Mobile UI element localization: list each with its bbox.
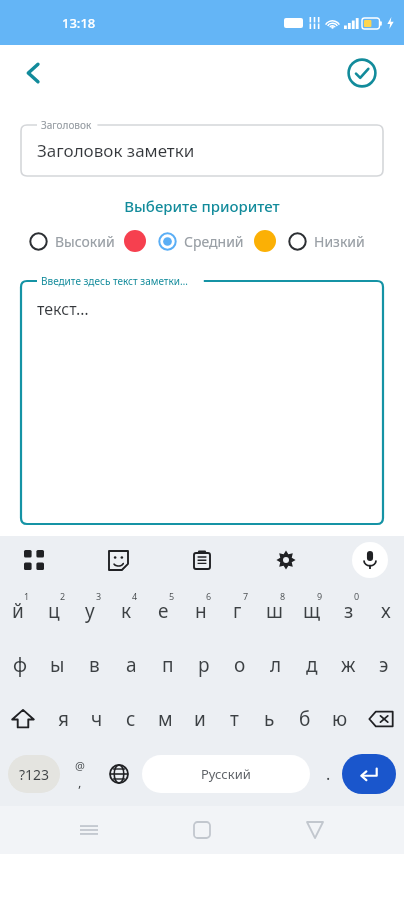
button[interactable]: Priority colour bbox=[254, 230, 276, 252]
button[interactable]: ?123 bbox=[8, 755, 60, 793]
button[interactable]: н bbox=[182, 584, 219, 638]
staticText: 9 bbox=[317, 590, 323, 602]
staticText: Высокий bbox=[55, 232, 115, 251]
button[interactable]: е bbox=[145, 584, 182, 638]
button[interactable]: Enter bbox=[342, 754, 396, 794]
staticText: Средний bbox=[184, 232, 244, 251]
staticText: 0 bbox=[354, 590, 360, 602]
staticText: э bbox=[379, 652, 389, 678]
staticText: х bbox=[381, 598, 391, 624]
button[interactable]: в bbox=[76, 638, 113, 692]
staticText: ю bbox=[332, 706, 348, 732]
staticText: Введите здесь текст заметки… bbox=[41, 274, 188, 288]
button[interactable]: п bbox=[150, 638, 186, 692]
button[interactable]: Selected priority bbox=[157, 231, 177, 251]
button[interactable]: я bbox=[46, 692, 80, 746]
staticText: 8 bbox=[280, 590, 286, 602]
button[interactable]: Settings bbox=[266, 540, 306, 580]
button[interactable]: т bbox=[217, 692, 252, 746]
button[interactable]: Clipboard bbox=[182, 540, 222, 580]
staticText: Низкий bbox=[314, 232, 365, 251]
staticText: з bbox=[344, 598, 354, 624]
staticText: 4 bbox=[132, 590, 138, 602]
staticText: 6 bbox=[206, 590, 212, 602]
staticText: л bbox=[270, 652, 282, 678]
button[interactable]: . bbox=[314, 746, 342, 802]
staticText: а bbox=[126, 652, 137, 678]
button[interactable]: ч bbox=[80, 692, 114, 746]
staticText: ь bbox=[264, 706, 275, 732]
button[interactable]: м bbox=[148, 692, 182, 746]
staticText: е bbox=[158, 598, 169, 624]
button[interactable]: а bbox=[113, 638, 150, 692]
staticText: б bbox=[299, 706, 311, 732]
button[interactable]: к bbox=[108, 584, 145, 638]
staticText: н bbox=[195, 598, 207, 624]
staticText: с bbox=[126, 706, 136, 732]
button[interactable]: р bbox=[186, 638, 222, 692]
staticText: р bbox=[198, 652, 210, 678]
button[interactable]: ы bbox=[39, 638, 76, 692]
staticText: 1 bbox=[24, 590, 30, 602]
staticText: я bbox=[58, 706, 69, 732]
button[interactable]: Voice input bbox=[350, 540, 390, 580]
button[interactable]: й bbox=[0, 584, 36, 638]
button[interactable]: текст… bbox=[21, 281, 383, 524]
button[interactable]: Stickers bbox=[98, 540, 138, 580]
staticText: Заголовок bbox=[41, 118, 92, 132]
button[interactable]: о bbox=[222, 638, 258, 692]
button[interactable]: л bbox=[258, 638, 294, 692]
button[interactable]: и bbox=[182, 692, 217, 746]
button[interactable]: ж bbox=[330, 638, 366, 692]
button[interactable]: у bbox=[72, 584, 108, 638]
button[interactable]: Shift bbox=[0, 692, 46, 746]
button[interactable]: ц bbox=[36, 584, 72, 638]
button[interactable]: Backspace bbox=[357, 692, 404, 746]
button[interactable]: Select priority bbox=[287, 231, 307, 251]
staticText: к bbox=[121, 598, 132, 624]
staticText: 3 bbox=[96, 590, 102, 602]
button[interactable]: Заголовок заметки bbox=[21, 125, 383, 176]
button[interactable]: с bbox=[114, 692, 148, 746]
button[interactable]: щ bbox=[293, 584, 330, 638]
button[interactable]: Symbols bbox=[60, 746, 100, 802]
staticText: ж bbox=[341, 652, 356, 678]
button[interactable]: ш bbox=[256, 584, 293, 638]
staticText: г bbox=[233, 598, 242, 624]
button[interactable]: э bbox=[366, 638, 402, 692]
staticText: д bbox=[306, 652, 318, 678]
staticText: ц bbox=[48, 598, 60, 624]
staticText: м bbox=[158, 706, 173, 732]
staticText: 7 bbox=[243, 590, 249, 602]
button[interactable]: д bbox=[294, 638, 330, 692]
button[interactable]: Change language bbox=[100, 746, 138, 802]
button[interactable]: з bbox=[330, 584, 367, 638]
staticText: Русский bbox=[201, 765, 251, 783]
staticText: , bbox=[78, 773, 82, 791]
staticText: ы bbox=[50, 652, 65, 678]
button[interactable]: ю bbox=[322, 692, 357, 746]
button[interactable]: Priority colour bbox=[124, 230, 146, 252]
staticText: и bbox=[194, 706, 206, 732]
button[interactable]: ь bbox=[252, 692, 287, 746]
button[interactable]: б bbox=[287, 692, 322, 746]
staticText: щ bbox=[303, 598, 321, 624]
button[interactable]: Back bbox=[12, 51, 56, 95]
button[interactable]: ф bbox=[2, 638, 39, 692]
staticText: о bbox=[234, 652, 246, 678]
button[interactable]: х bbox=[367, 584, 404, 638]
staticText: п bbox=[162, 652, 174, 678]
button[interactable]: Recent apps bbox=[65, 806, 113, 854]
button[interactable]: Back bbox=[291, 806, 339, 854]
staticText: т bbox=[230, 706, 239, 732]
button[interactable]: Apps bbox=[14, 540, 54, 580]
button[interactable]: Home bbox=[178, 806, 226, 854]
staticText: 5 bbox=[169, 590, 175, 602]
button[interactable]: Select priority bbox=[28, 231, 48, 251]
staticText: й bbox=[12, 598, 24, 624]
button[interactable]: Русский bbox=[142, 755, 310, 793]
button[interactable]: Save note bbox=[340, 51, 384, 95]
staticText: ф bbox=[13, 652, 28, 678]
staticText: . bbox=[326, 763, 331, 785]
button[interactable]: г bbox=[219, 584, 256, 638]
